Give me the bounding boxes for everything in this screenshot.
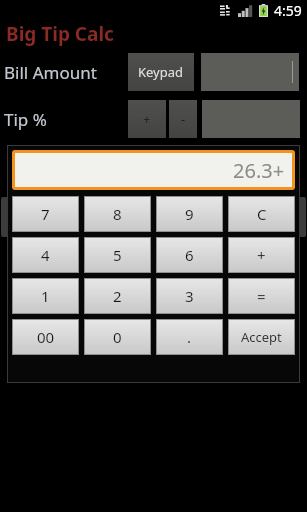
button[interactable]: = [228, 278, 295, 314]
button[interactable]: - [169, 100, 197, 138]
staticText: 26.3+ [233, 157, 285, 184]
button[interactable]: + [128, 100, 166, 138]
button[interactable]: Keypad [128, 53, 194, 91]
staticText: Keypad [138, 63, 184, 81]
button[interactable]: . [156, 319, 223, 355]
staticText: 00 [37, 327, 55, 347]
button[interactable]: Accept [228, 319, 295, 355]
button[interactable]: 1 [12, 278, 79, 314]
staticText: Big Tip Calc [6, 21, 114, 47]
staticText: 9 [185, 204, 194, 224]
staticText: - [181, 110, 186, 128]
staticText: Bill Amount [4, 61, 97, 84]
staticText: = [257, 286, 266, 306]
button[interactable]: 4 [12, 237, 79, 273]
staticText: 6 [185, 245, 194, 265]
staticText: Accept [241, 328, 282, 346]
staticText: 0 [113, 327, 122, 347]
staticText: + [143, 110, 151, 128]
button[interactable]: 7 [12, 196, 79, 232]
staticText: 3 [185, 286, 194, 306]
staticText: Tip % [4, 108, 47, 131]
staticText: 1 [41, 286, 50, 306]
button[interactable]: 8 [84, 196, 151, 232]
button[interactable]: 2 [84, 278, 151, 314]
staticText: + [257, 245, 266, 265]
button[interactable]: C [228, 196, 295, 232]
button[interactable]: + [228, 237, 295, 273]
button[interactable] [201, 53, 299, 91]
staticText: C [257, 204, 267, 224]
button[interactable]: 3 [156, 278, 223, 314]
staticText: 4 [41, 245, 50, 265]
staticText: . [187, 327, 192, 347]
staticText: 7 [41, 204, 50, 224]
button[interactable]: 00 [12, 319, 79, 355]
button[interactable]: 9 [156, 196, 223, 232]
staticText: 5 [113, 245, 122, 265]
button[interactable]: 5 [84, 237, 151, 273]
staticText: 2 [113, 286, 122, 306]
staticText: 8 [113, 204, 122, 224]
button[interactable]: 0 [84, 319, 151, 355]
staticText: 4:59 [274, 1, 302, 20]
button[interactable]: 6 [156, 237, 223, 273]
